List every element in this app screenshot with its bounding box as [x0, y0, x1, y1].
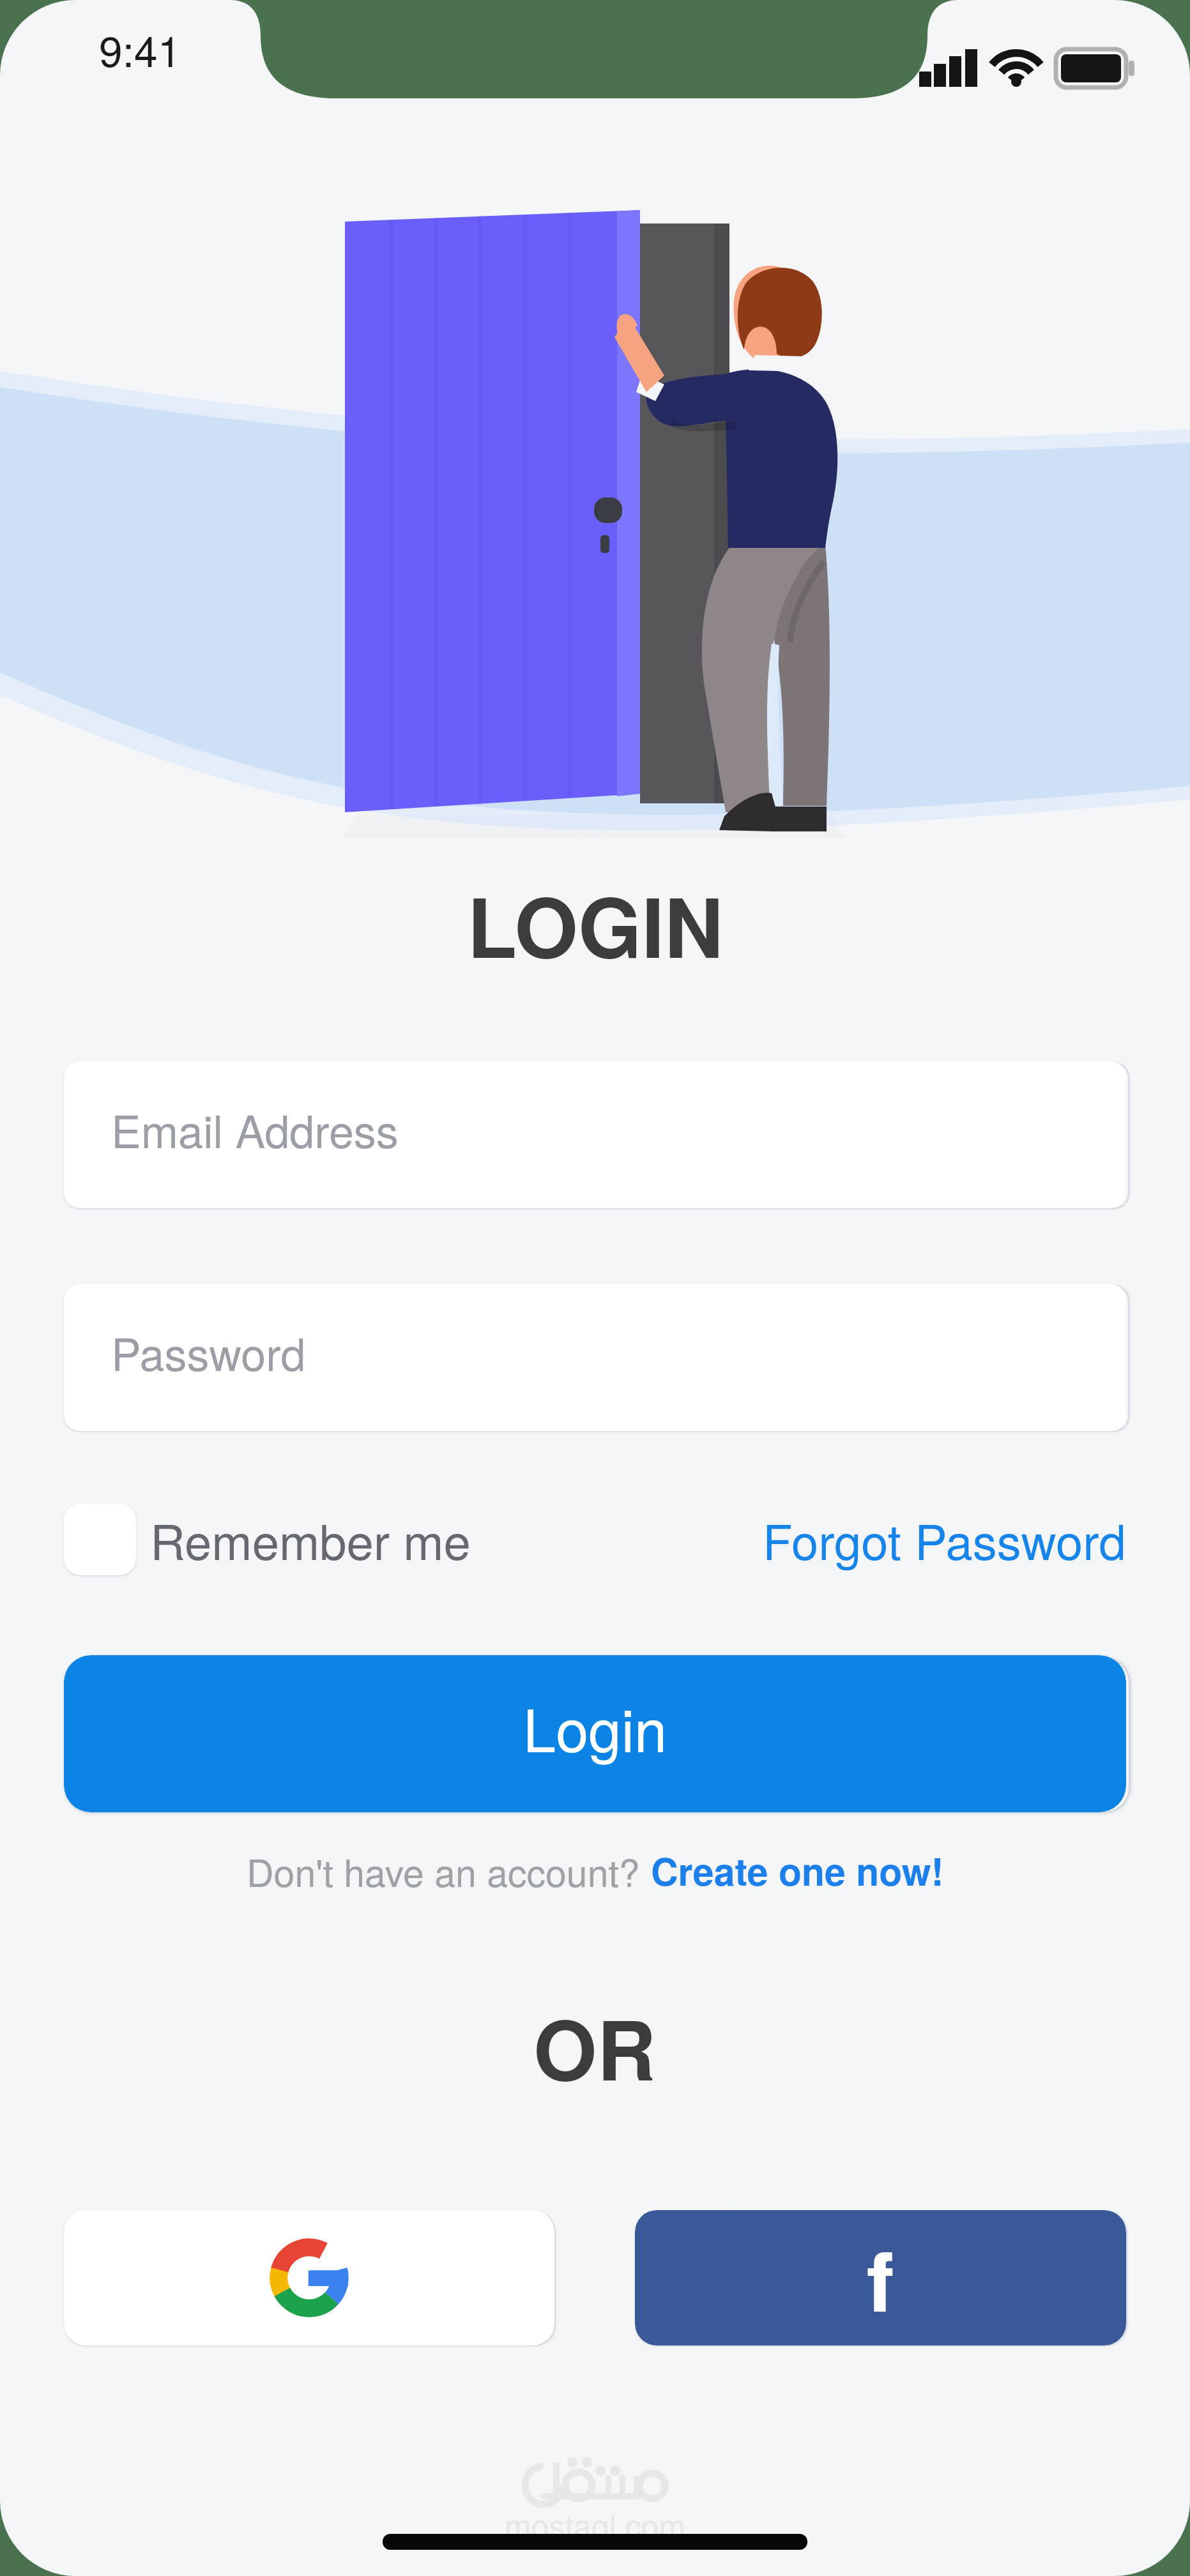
button[interactable]: Password — [64, 1284, 1126, 1431]
staticText: f — [867, 2220, 894, 2337]
button[interactable]: Create one now! — [651, 1844, 944, 1897]
staticText: mostaql.com — [505, 2501, 686, 2547]
staticText: Email Address — [111, 1097, 399, 1161]
button[interactable]: Email Address — [64, 1061, 1126, 1208]
staticText: Forgot Password — [763, 1504, 1126, 1574]
staticText: OR — [533, 1989, 657, 2105]
button[interactable]: Sign in with Google — [64, 2210, 554, 2345]
button[interactable]: Login — [64, 1655, 1126, 1812]
button[interactable]: Remember me — [64, 1503, 471, 1575]
staticText: Login — [523, 1685, 667, 1769]
staticText: LOGIN — [467, 866, 724, 983]
button[interactable]: Sign in with Facebook — [635, 2210, 1126, 2345]
staticText: 9:41 — [99, 19, 181, 79]
staticText: Remember me — [150, 1504, 471, 1574]
staticText: Password — [111, 1320, 306, 1384]
button[interactable]: Forgot Password — [763, 1504, 1126, 1574]
staticText: Create one now! — [651, 1844, 944, 1897]
staticText: Don't have an account? — [247, 1844, 651, 1897]
